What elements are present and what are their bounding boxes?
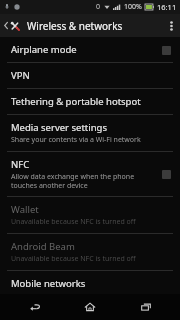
staticText: Share your contents via a Wi-Fi network (11, 135, 141, 145)
staticText: Android Beam (11, 240, 75, 253)
staticText: 100% (124, 2, 142, 12)
staticText: Mobile networks (11, 277, 86, 288)
button[interactable]: Recent apps (125, 294, 167, 320)
button[interactable]: Media server settings (0, 115, 180, 151)
button[interactable]: NFC switch (160, 168, 172, 180)
button[interactable]: Home (69, 294, 111, 320)
staticText: VPN (11, 69, 30, 82)
button[interactable]: Airplane mode (0, 37, 180, 62)
staticText: Media server settings (11, 121, 107, 134)
staticText: Allow data exchange when the phone touch… (11, 172, 154, 190)
button[interactable]: More options (163, 14, 180, 37)
staticText: Airplane mode (11, 43, 77, 56)
button[interactable]: Mobile networks (0, 271, 180, 294)
staticText: Unavailable because NFC is turned off (11, 254, 136, 264)
button[interactable]: Airplane mode switch (160, 44, 172, 56)
button[interactable]: Back (14, 294, 56, 320)
button[interactable]: Android Beam (0, 234, 180, 270)
staticText: Wireless & networks (27, 19, 123, 33)
button[interactable]: Tethering & portable hotspot (0, 89, 180, 114)
staticText: Tethering & portable hotspot (11, 95, 141, 108)
staticText: NFC (11, 158, 30, 171)
button[interactable]: NFC (0, 152, 180, 196)
staticText: Wallet (11, 203, 39, 216)
button[interactable]: Wallet (0, 197, 180, 233)
button[interactable]: VPN (0, 63, 180, 88)
button[interactable]: Navigate up (0, 14, 23, 37)
staticText: Unavailable because NFC is turned off (11, 217, 136, 227)
staticText: 16:11 (157, 2, 177, 12)
staticText: 0 (96, 2, 101, 12)
